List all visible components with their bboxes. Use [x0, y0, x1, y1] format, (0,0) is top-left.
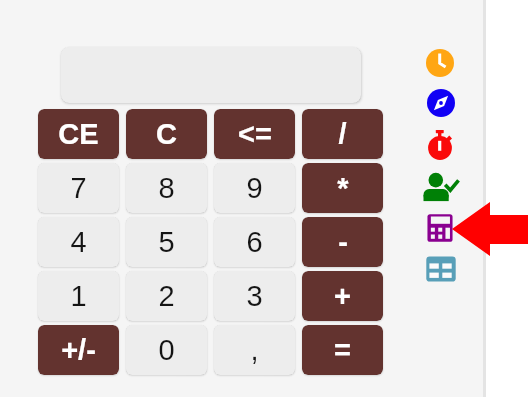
button[interactable]: +: [302, 271, 383, 321]
button[interactable]: 6: [214, 217, 295, 267]
button[interactable]: =: [302, 325, 383, 375]
staticText: 8: [158, 172, 175, 204]
button[interactable]: 8: [126, 163, 207, 213]
button[interactable]: Clock: [422, 45, 458, 81]
button[interactable]: 9: [214, 163, 295, 213]
staticText: CE: [58, 118, 99, 150]
staticText: C: [156, 118, 177, 150]
button[interactable]: 4: [38, 217, 119, 267]
staticText: 9: [246, 172, 263, 204]
button[interactable]: Approve user: [423, 169, 459, 205]
button[interactable]: 7: [38, 163, 119, 213]
button[interactable]: C: [126, 109, 207, 159]
button[interactable]: /: [302, 109, 383, 159]
button[interactable]: Calculator: [422, 210, 458, 246]
button[interactable]: *: [302, 163, 383, 213]
button[interactable]: <=: [214, 109, 295, 159]
button[interactable]: CE: [38, 109, 119, 159]
button[interactable]: -: [302, 217, 383, 267]
staticText: +: [334, 280, 351, 312]
staticText: 6: [246, 226, 263, 258]
button[interactable]: Timer: [422, 130, 458, 166]
staticText: 4: [70, 226, 87, 258]
button[interactable]: ,: [214, 325, 295, 375]
staticText: =: [334, 334, 351, 366]
staticText: ,: [250, 334, 259, 366]
button[interactable]: Explore: [423, 85, 459, 121]
button[interactable]: 1: [38, 271, 119, 321]
button[interactable]: 3: [214, 271, 295, 321]
staticText: 0: [158, 334, 175, 366]
staticText: 7: [70, 172, 87, 204]
staticText: <=: [238, 118, 272, 150]
staticText: -: [338, 226, 348, 258]
button[interactable]: 2: [126, 271, 207, 321]
button[interactable]: +/-: [38, 325, 119, 375]
staticText: 3: [246, 280, 263, 312]
button[interactable]: 0: [126, 325, 207, 375]
button[interactable]: 5: [126, 217, 207, 267]
staticText: *: [337, 172, 349, 204]
button[interactable]: Table: [423, 251, 459, 287]
staticText: 5: [158, 226, 175, 258]
staticText: 2: [158, 280, 175, 312]
staticText: 1: [70, 280, 87, 312]
staticText: +/-: [61, 334, 96, 366]
staticText: /: [338, 118, 347, 150]
